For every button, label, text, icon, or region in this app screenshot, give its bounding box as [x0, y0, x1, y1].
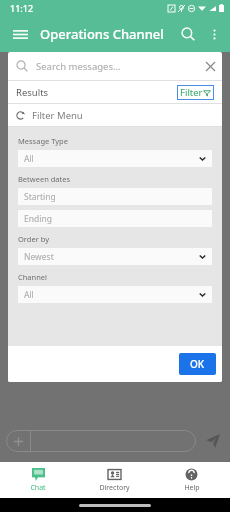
staticText: Directory — [99, 483, 130, 493]
staticText: All — [24, 153, 34, 165]
staticText: Results — [16, 86, 49, 99]
button[interactable]: OK — [179, 353, 216, 375]
button[interactable]: Ending — [18, 210, 212, 227]
button[interactable]: Newest — [18, 248, 212, 265]
staticText: Search messages... — [36, 60, 121, 73]
staticText: Newest — [24, 251, 54, 263]
staticText: Chat — [30, 483, 46, 493]
staticText: Operations Channel — [40, 25, 164, 43]
button[interactable] — [6, 430, 196, 452]
staticText: Between dates — [18, 174, 71, 184]
staticText: Help — [184, 483, 200, 493]
button[interactable]: Directory — [76, 462, 153, 498]
button[interactable]: Clear search — [198, 54, 222, 78]
button[interactable]: Chat — [0, 462, 76, 498]
button[interactable]: Search messages... — [8, 52, 222, 80]
staticText: Ending — [24, 213, 52, 225]
button[interactable]: Search — [174, 20, 202, 48]
staticText: Starting — [24, 191, 56, 203]
button[interactable]: Send message — [202, 430, 224, 452]
button[interactable]: More options — [202, 22, 226, 46]
button[interactable]: Starting — [18, 188, 212, 205]
staticText: Order by — [18, 234, 49, 244]
button[interactable]: Filter — [180, 86, 211, 99]
staticText: All — [24, 289, 34, 301]
staticText: Channel — [18, 272, 48, 282]
button[interactable]: All — [18, 150, 212, 167]
staticText: OK — [190, 357, 205, 371]
staticText: Filter — [180, 86, 203, 99]
button[interactable]: Filter Menu — [16, 104, 214, 126]
staticText: 11:12 — [10, 2, 34, 14]
staticText: Message Type — [18, 136, 68, 146]
staticText: Filter Menu — [32, 109, 83, 122]
button[interactable]: Open navigation menu — [6, 20, 34, 48]
button[interactable]: Help — [153, 462, 230, 498]
button[interactable]: All — [18, 286, 212, 303]
